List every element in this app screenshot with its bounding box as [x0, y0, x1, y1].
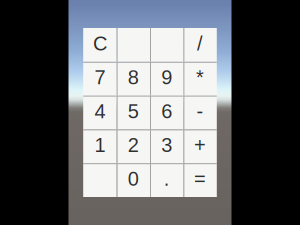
staticText: *	[196, 66, 204, 88]
staticText: 0	[128, 168, 139, 190]
staticText: 8	[128, 66, 139, 88]
button[interactable]: 8	[117, 62, 150, 96]
button[interactable]: 4	[83, 96, 117, 129]
button[interactable]: /	[183, 28, 217, 62]
staticText: 5	[128, 100, 139, 122]
staticText: C	[93, 32, 107, 55]
button[interactable]: 0	[117, 163, 150, 197]
button[interactable]: 3	[150, 129, 183, 163]
button[interactable]	[117, 28, 150, 62]
staticText: 3	[161, 134, 172, 156]
staticText: -	[197, 100, 204, 122]
button[interactable]: C	[83, 28, 117, 62]
button[interactable]	[83, 163, 117, 197]
staticText: 4	[94, 100, 105, 122]
button[interactable]: 2	[117, 129, 150, 163]
staticText: 7	[94, 66, 105, 88]
staticText: 6	[161, 100, 172, 122]
button[interactable]: -	[183, 96, 217, 129]
button[interactable]: +	[183, 129, 217, 163]
button[interactable]: =	[183, 163, 217, 197]
button[interactable]: 6	[150, 96, 183, 129]
staticText: /	[197, 32, 203, 55]
button[interactable]: 7	[83, 62, 117, 96]
button[interactable]: *	[183, 62, 217, 96]
staticText: =	[194, 168, 206, 190]
button[interactable]: 1	[83, 129, 117, 163]
button[interactable]: .	[150, 163, 183, 197]
staticText: .	[164, 168, 170, 190]
staticText: 2	[128, 134, 139, 156]
button[interactable]: 9	[150, 62, 183, 96]
staticText: 1	[94, 134, 105, 156]
staticText: 9	[161, 66, 172, 88]
button[interactable]	[150, 28, 183, 62]
button[interactable]: 5	[117, 96, 150, 129]
staticText: +	[194, 134, 206, 156]
